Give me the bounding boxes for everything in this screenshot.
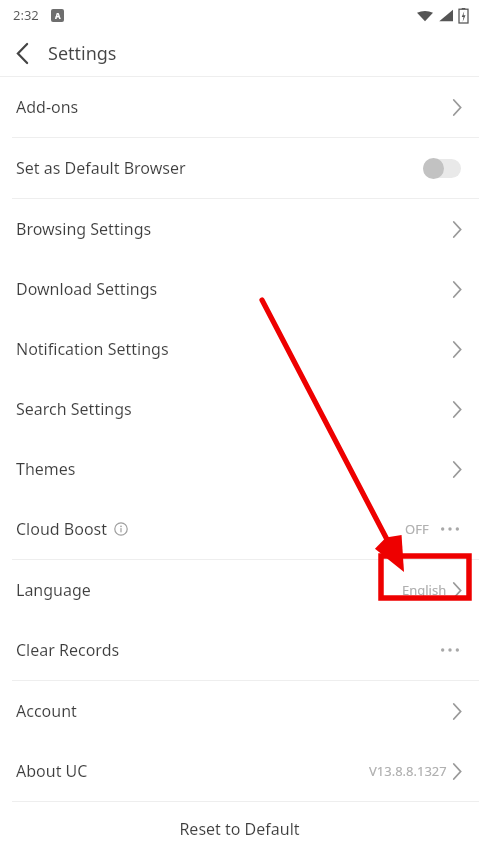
staticText: Notification Settings: [16, 338, 169, 360]
staticText: English: [402, 581, 447, 599]
button[interactable]: Download Settings: [0, 259, 479, 319]
button[interactable]: Account: [0, 681, 479, 741]
staticText: Account: [16, 700, 77, 722]
button[interactable]: Set as Default Browser: [0, 138, 479, 198]
staticText: Clear Records: [16, 639, 120, 661]
button[interactable]: Add-ons: [0, 77, 479, 137]
staticText: Reset to Default: [179, 818, 300, 840]
button[interactable]: Search Settings: [0, 379, 479, 439]
staticText: OFF: [405, 520, 429, 538]
staticText: Language: [16, 579, 91, 601]
button[interactable]: About UC: [0, 741, 479, 801]
staticText: V13.8.8.1327: [369, 762, 447, 780]
staticText: Themes: [16, 458, 76, 480]
staticText: Cloud Boost: [16, 518, 108, 540]
button[interactable]: Reset to Default: [0, 802, 479, 855]
button[interactable]: Clear Records: [0, 620, 479, 680]
staticText: Add-ons: [16, 96, 79, 118]
staticText: About UC: [16, 760, 88, 782]
staticText: 2:32: [13, 6, 39, 24]
button[interactable]: Language: [0, 560, 479, 620]
staticText: Browsing Settings: [16, 218, 152, 240]
staticText: Search Settings: [16, 398, 132, 420]
button[interactable]: Themes: [0, 439, 479, 499]
staticText: A: [55, 10, 61, 21]
button[interactable]: Browsing Settings: [0, 199, 479, 259]
button[interactable]: Back: [0, 31, 44, 75]
button[interactable]: Notification Settings: [0, 319, 479, 379]
staticText: Download Settings: [16, 278, 158, 300]
button[interactable]: Set as Default Browser toggle: [423, 158, 461, 179]
staticText: Settings: [48, 41, 117, 66]
staticText: Set as Default Browser: [16, 157, 186, 179]
button[interactable]: Cloud Boost: [0, 499, 479, 559]
